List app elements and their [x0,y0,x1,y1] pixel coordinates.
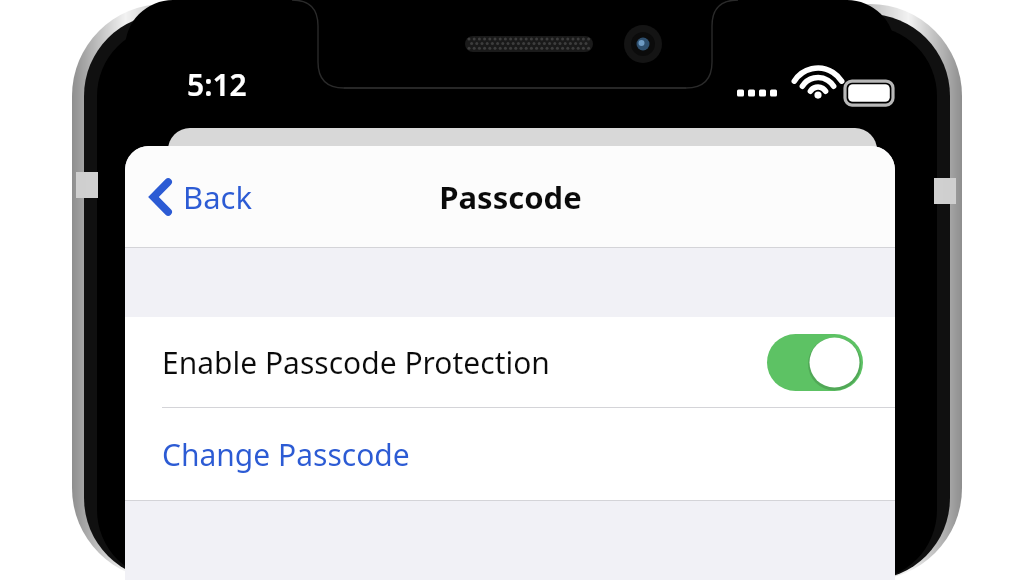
staticText: Change Passcode [162,434,410,475]
staticText: Passcode [439,176,582,218]
staticText: Back [183,176,252,218]
button[interactable]: Back [143,170,260,224]
button[interactable]: Enable Passcode Protection [767,334,863,391]
button[interactable]: Change Passcode [125,408,895,500]
staticText: 5:12 [187,64,247,105]
button[interactable]: Enable Passcode Protection [125,317,895,408]
staticText: Enable Passcode Protection [162,342,550,383]
